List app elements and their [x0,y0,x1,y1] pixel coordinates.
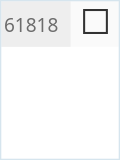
button[interactable]: 61818 [0,2,70,46]
staticText: 61818 [4,12,59,38]
button[interactable]: Checkbox [82,8,109,35]
